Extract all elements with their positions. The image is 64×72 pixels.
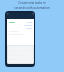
staticText: seconds with automation <box>14 6 50 10</box>
staticText: Create new tasks in <box>18 1 46 5</box>
